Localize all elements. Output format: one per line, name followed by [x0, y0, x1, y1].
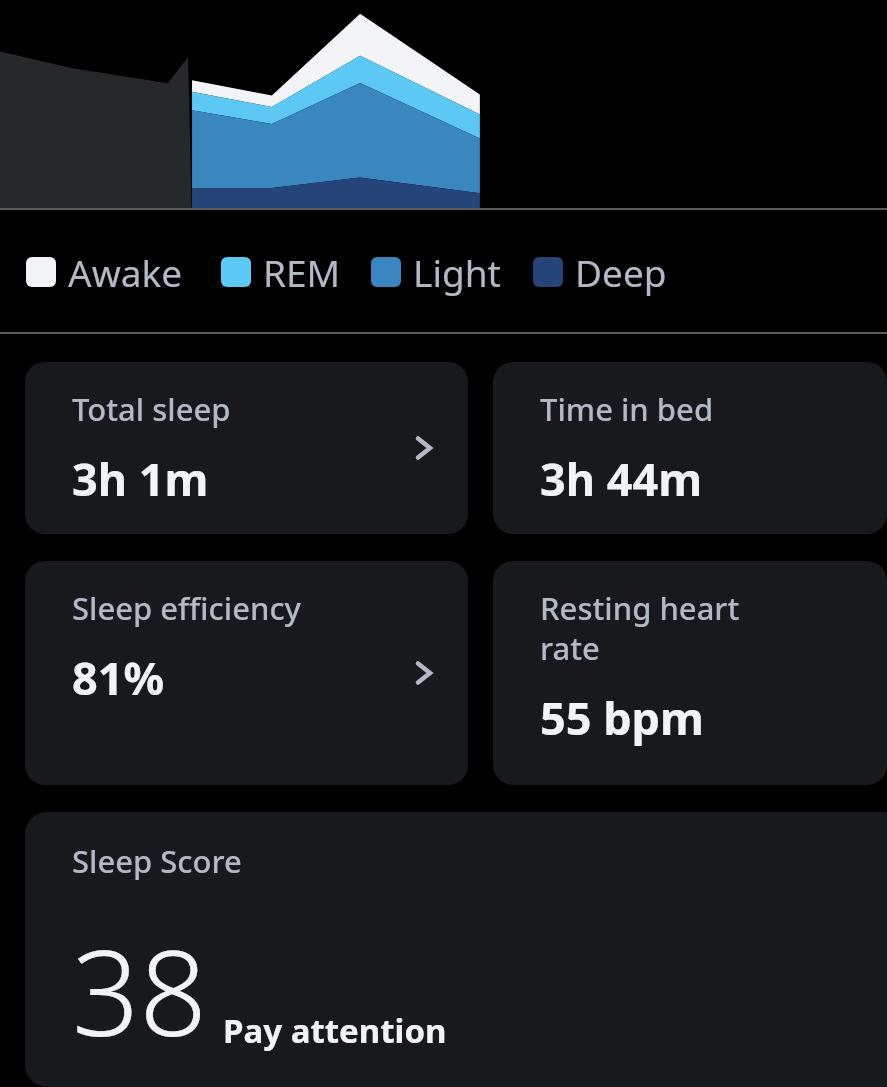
staticText: 38	[72, 910, 207, 1071]
button[interactable]: Deep	[533, 247, 667, 297]
staticText: Pay attention	[223, 1008, 447, 1053]
staticText: Resting heart rate	[540, 587, 740, 669]
button[interactable]: Total sleep	[25, 362, 468, 534]
staticText: 81%	[72, 647, 165, 708]
staticText: REM	[263, 247, 341, 297]
button[interactable]: Open Total sleep details	[402, 426, 446, 470]
staticText: Light	[413, 247, 501, 297]
button[interactable]: Open Sleep efficiency details	[402, 651, 446, 695]
button[interactable]: Sleep Score	[25, 812, 887, 1087]
staticText: Deep	[575, 247, 667, 297]
staticText: 3h 1m	[72, 448, 209, 509]
staticText: Sleep Score	[72, 840, 242, 882]
button[interactable]: Awake	[26, 247, 183, 297]
staticText: Awake	[68, 247, 183, 297]
staticText: Sleep efficiency	[72, 587, 301, 629]
staticText: 55 bpm	[540, 687, 704, 748]
staticText: Time in bed	[540, 388, 714, 430]
button[interactable]: Resting heart rate	[493, 561, 887, 785]
button[interactable]: Light	[371, 247, 501, 297]
staticText: 3h 44m	[540, 448, 703, 509]
button[interactable]: Time in bed	[493, 362, 887, 534]
button[interactable]: REM	[221, 247, 341, 297]
staticText: Total sleep	[72, 388, 231, 430]
button[interactable]: Sleep efficiency	[25, 561, 468, 785]
